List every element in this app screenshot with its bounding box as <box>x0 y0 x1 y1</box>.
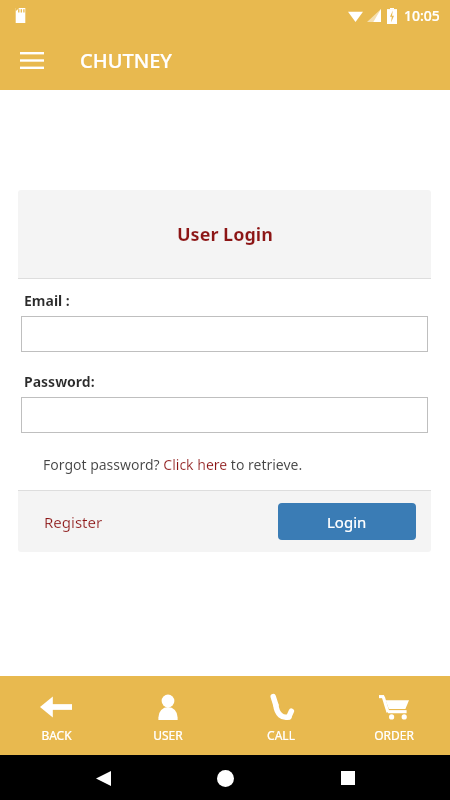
button[interactable]: Register <box>44 512 103 532</box>
staticText: User Login <box>177 222 273 247</box>
staticText: USER <box>153 727 183 743</box>
staticText: BACK <box>41 727 72 743</box>
button[interactable]: Forgot password? Click here to retrieve. <box>43 455 303 474</box>
button[interactable]: Open navigation menu <box>10 38 54 82</box>
staticText: Password: <box>24 372 95 391</box>
button[interactable]: ORDER <box>337 676 450 755</box>
button[interactable]: Home <box>205 758 245 798</box>
button[interactable]: Recent apps <box>328 758 368 798</box>
staticText: 10:05 <box>404 6 440 25</box>
staticText: CALL <box>267 727 295 743</box>
button[interactable]: Login <box>278 503 416 540</box>
button[interactable]: USER <box>112 676 224 755</box>
staticText: Login <box>327 512 367 532</box>
button[interactable]: CALL <box>224 676 337 755</box>
button[interactable] <box>21 316 428 352</box>
button[interactable]: Back <box>83 758 123 798</box>
button[interactable]: BACK <box>0 676 112 755</box>
button[interactable] <box>21 397 428 433</box>
staticText: CHUTNEY <box>80 47 172 74</box>
staticText: ORDER <box>374 727 414 743</box>
staticText: Email : <box>24 291 70 310</box>
